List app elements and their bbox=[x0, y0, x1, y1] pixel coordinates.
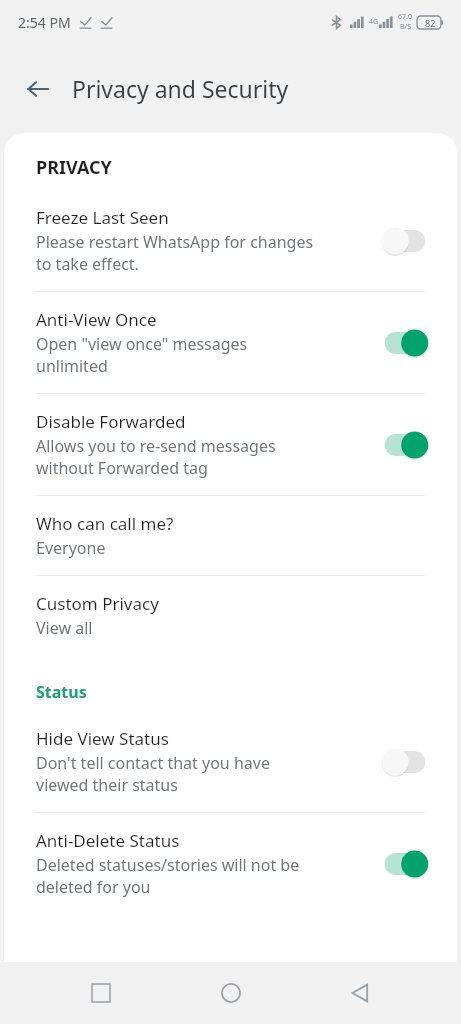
button[interactable]: Off bbox=[379, 747, 431, 777]
staticText: Privacy and Security bbox=[72, 73, 289, 104]
staticText: Please restart WhatsApp for changes to t… bbox=[36, 231, 314, 275]
staticText: Don't tell contact that you have viewed … bbox=[36, 752, 270, 796]
staticText: Everyone bbox=[36, 537, 106, 559]
button[interactable]: Hide View Status bbox=[4, 711, 457, 812]
staticText: Deleted statuses/stories will not be del… bbox=[36, 854, 300, 898]
button[interactable]: Anti-View Once bbox=[4, 292, 457, 393]
button[interactable]: On bbox=[379, 328, 431, 358]
button[interactable]: Back bbox=[14, 65, 62, 113]
button[interactable]: Back bbox=[332, 965, 388, 1021]
staticText: Open "view once" messages unlimited bbox=[36, 333, 248, 377]
staticText: B/S bbox=[400, 22, 411, 32]
staticText: 2:54 PM bbox=[18, 13, 71, 32]
button[interactable]: Disable Forwarded bbox=[4, 394, 457, 495]
staticText: 4G bbox=[369, 17, 379, 27]
button[interactable]: Custom Privacy bbox=[4, 576, 457, 655]
staticText: 82 bbox=[425, 17, 436, 29]
button[interactable]: Recent apps bbox=[73, 965, 129, 1021]
staticText: Who can call me? bbox=[36, 512, 174, 535]
button[interactable]: Home bbox=[203, 965, 259, 1021]
button[interactable]: On bbox=[379, 849, 431, 879]
staticText: Allows you to re-send messages without F… bbox=[36, 435, 276, 479]
staticText: 67.0 bbox=[398, 12, 412, 22]
staticText: Hide View Status bbox=[36, 727, 169, 750]
staticText: PRIVACY bbox=[36, 155, 112, 180]
button[interactable]: On bbox=[379, 430, 431, 460]
staticText: Custom Privacy bbox=[36, 592, 159, 615]
staticText: Anti-View Once bbox=[36, 308, 157, 331]
button[interactable]: Anti-Delete Status bbox=[4, 813, 457, 914]
staticText: View all bbox=[36, 617, 93, 639]
button[interactable]: Off bbox=[379, 226, 431, 256]
staticText: Status bbox=[36, 681, 87, 703]
button[interactable]: Who can call me? bbox=[4, 496, 457, 575]
staticText: Freeze Last Seen bbox=[36, 206, 169, 229]
staticText: Anti-Delete Status bbox=[36, 829, 180, 852]
staticText: Disable Forwarded bbox=[36, 410, 186, 433]
button[interactable]: Freeze Last Seen bbox=[4, 190, 457, 291]
